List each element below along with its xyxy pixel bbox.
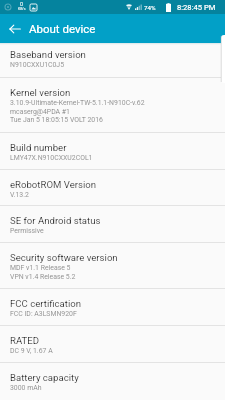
staticText: Baseband version <box>10 49 86 60</box>
staticText: 0 <box>20 1 24 7</box>
staticText: FCC ID: A3LSMN920F <box>10 310 225 318</box>
button[interactable]: SE for Android status <box>0 206 225 242</box>
button[interactable]: Security software version <box>0 243 225 288</box>
staticText: About device <box>29 22 96 35</box>
staticText: VPN v1.4 Release 5.2 <box>10 273 225 281</box>
staticText: Permissive <box>10 227 225 235</box>
staticText: Build number <box>10 142 67 153</box>
staticText: 3.10.9-Ultimate-Kernel-TW-5.1.1-N910C-v.… <box>10 99 225 107</box>
staticText: MDF v1.1 Release 5 <box>10 264 225 272</box>
staticText: 3000 mAh <box>10 384 225 392</box>
button[interactable]: Navigate up <box>0 14 29 43</box>
staticText: RATED <box>10 335 40 346</box>
button[interactable]: FCC certification <box>0 289 225 325</box>
staticText: LMY47X.N910CXXU2COL1 <box>10 154 225 162</box>
staticText: SE for Android status <box>10 215 101 226</box>
staticText: 8:28:45 PM <box>177 3 216 12</box>
button[interactable]: Build number <box>0 133 225 169</box>
staticText: 74% <box>144 4 156 11</box>
button[interactable]: Battery capacity <box>0 363 225 400</box>
staticText: mcaserg@4PDA #1 <box>10 108 225 116</box>
staticText: DC 9 V, 1.67 A <box>10 347 225 355</box>
staticText: Battery capacity <box>10 372 79 383</box>
button[interactable]: RATED <box>0 326 225 362</box>
staticText: KB/s <box>18 7 26 11</box>
staticText: V.13.2 <box>10 191 225 199</box>
staticText: N910CXXU1C0J5 <box>10 61 225 69</box>
staticText: FCC certification <box>10 298 82 309</box>
button[interactable]: Baseband version <box>0 43 225 77</box>
button[interactable]: eRobotROM Version <box>0 170 225 205</box>
staticText: eRobotROM Version <box>10 179 97 190</box>
button[interactable]: More options <box>221 35 225 83</box>
staticText: Tue Jan 5 18:05:15 VOLT 2016 <box>10 116 225 124</box>
button[interactable]: Kernel version <box>0 78 225 132</box>
staticText: Security software version <box>10 252 118 263</box>
staticText: Kernel version <box>10 87 71 98</box>
